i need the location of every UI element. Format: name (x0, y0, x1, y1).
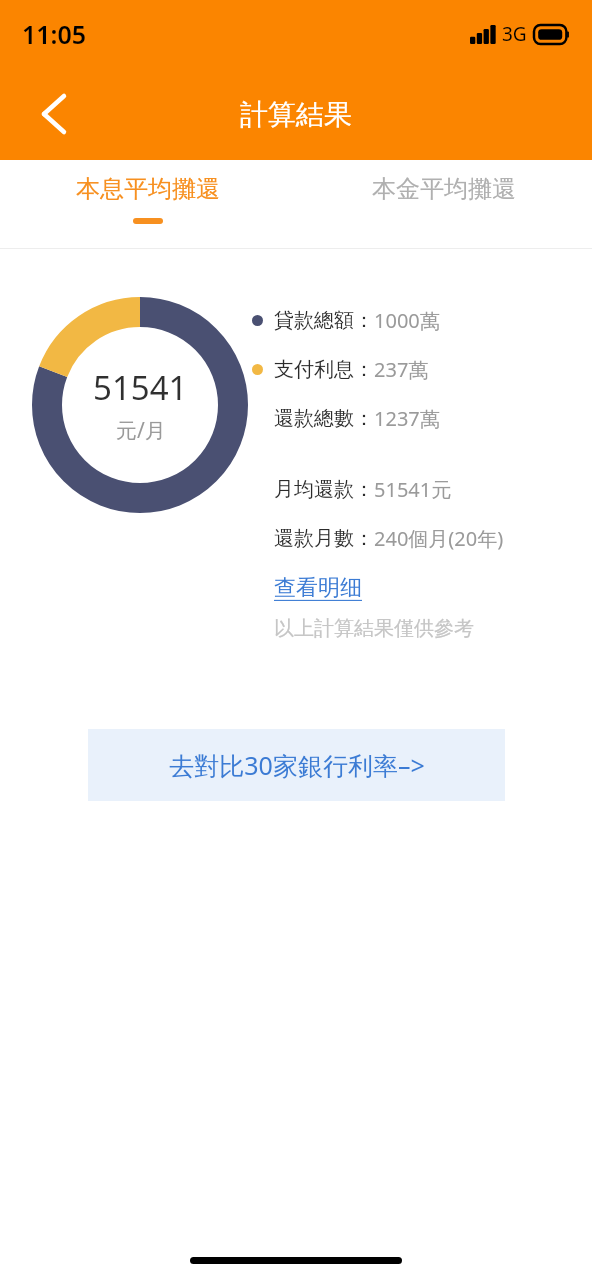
button[interactable]: 本息平均攤還 (0, 160, 296, 249)
staticText: 本金平均攤還 (372, 174, 516, 204)
staticText: 元/月 (116, 416, 166, 445)
staticText: 還款月數： (274, 526, 374, 551)
staticText: 237萬 (374, 356, 429, 383)
staticText: 1237萬 (374, 405, 440, 432)
button[interactable]: 去對比30家銀行利率–> (88, 729, 505, 801)
staticText: 51541 (93, 365, 188, 410)
staticText: 11:05 (22, 17, 87, 51)
staticText: 51541元 (374, 476, 452, 503)
staticText: 月均還款： (274, 477, 374, 502)
staticText: 還款總數： (274, 406, 374, 431)
button[interactable]: Back (24, 84, 84, 144)
button[interactable]: 本金平均攤還 (296, 160, 592, 249)
staticText: 1000萬 (374, 307, 440, 334)
staticText: 本息平均攤還 (76, 174, 220, 204)
staticText: 以上計算結果僅供參考 (274, 616, 474, 641)
staticText: 計算結果 (240, 97, 352, 132)
staticText: 貸款總額： (274, 308, 374, 333)
staticText: 查看明细 (274, 574, 362, 602)
staticText: 240個月(20年) (374, 525, 504, 552)
staticText: 3G (502, 21, 527, 47)
staticText: 支付利息： (274, 357, 374, 382)
button[interactable]: 查看明细 (274, 574, 362, 602)
staticText: 去對比30家銀行利率–> (169, 748, 425, 782)
